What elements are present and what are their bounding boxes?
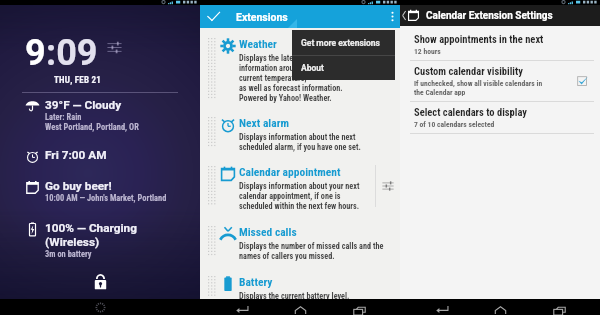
button[interactable]: About: [292, 56, 395, 80]
staticText: Get more extensions: [301, 38, 380, 48]
button[interactable]: Navigate up: [400, 5, 600, 26]
staticText: 12 hours: [414, 47, 441, 56]
staticText: 39°F — Cloudy: [45, 98, 122, 112]
staticText: :09: [46, 32, 98, 74]
button[interactable]: Select calendars to display: [400, 102, 600, 133]
button[interactable]: Show appointments in the next: [400, 29, 600, 60]
staticText: 7 of 10 calendars selected: [414, 120, 495, 129]
button[interactable]: More options: [384, 5, 400, 28]
staticText: Go buy beer!: [45, 179, 112, 193]
staticText: 9: [25, 32, 46, 74]
button[interactable]: Battery: [200, 275, 400, 301]
staticText: current temperature,: [239, 73, 307, 83]
staticText: West Portland, Portland, OR: [45, 122, 139, 132]
button[interactable]: Next alarm: [200, 116, 400, 152]
button[interactable]: Unlock: [94, 274, 107, 290]
button[interactable]: Back: [225, 306, 259, 315]
staticText: Missed calls: [239, 225, 297, 238]
staticText: information around your: [239, 63, 318, 73]
staticText: scheduled alarm, if you have one set.: [239, 142, 361, 152]
button[interactable]: Get more extensions: [292, 30, 395, 55]
staticText: scheduled within the next few hours.: [239, 201, 360, 211]
staticText: Weather: [239, 37, 277, 50]
button[interactable]: Recent apps: [342, 306, 376, 315]
staticText: Custom calendar visibility: [414, 65, 523, 77]
staticText: Displays the current battery level.: [239, 291, 350, 301]
staticText: Select calendars to display: [414, 106, 527, 118]
button[interactable]: Widget settings: [107, 40, 122, 55]
button[interactable]: Done: [200, 5, 226, 28]
staticText: 100% — Charging (Wireless): [45, 221, 137, 249]
staticText: names of callers you missed.: [239, 251, 335, 261]
staticText: Powered by Yahoo! Weather.: [239, 93, 332, 103]
button[interactable]: Fri 7:00 AM: [0, 148, 200, 164]
staticText: Later: Rain: [45, 112, 82, 122]
staticText: Next alarm: [239, 116, 289, 129]
staticText: Displays information about the next: [239, 132, 356, 142]
button[interactable]: 100% — Charging (Wireless): [0, 221, 200, 259]
staticText: Show appointments in the next: [414, 33, 544, 45]
button[interactable]: Go buy beer!: [0, 179, 200, 203]
button[interactable]: Home: [483, 306, 517, 315]
button[interactable]: Back: [425, 306, 459, 315]
staticText: Calendar Extension Settings: [426, 10, 553, 22]
button[interactable]: Home: [283, 306, 317, 315]
staticText: Displays the latest weather: [239, 53, 328, 63]
staticText: calendar appointment, if one is: [239, 191, 341, 201]
button[interactable]: Calendar appointment: [200, 165, 400, 211]
staticText: THU, FEB 21: [54, 75, 101, 86]
button[interactable]: Custom calendar visibility: [400, 61, 600, 101]
button[interactable]: Recent apps: [542, 306, 576, 315]
staticText: About: [301, 63, 324, 73]
staticText: Calendar appointment: [239, 165, 341, 178]
staticText: Fri 7:00 AM: [45, 148, 107, 162]
staticText: If unchecked, show all visible calendars…: [414, 79, 543, 88]
staticText: Displays the number of missed calls and …: [239, 241, 384, 251]
staticText: 10:00 AM — John's Market, Portland: [45, 193, 167, 203]
button[interactable]: Extension settings: [376, 165, 400, 207]
button[interactable]: Custom calendar visibility checkbox: [572, 71, 592, 91]
button[interactable]: 39°F — Cloudy: [0, 98, 200, 132]
button[interactable]: Weather: [200, 37, 400, 103]
staticText: Displays information about your next: [239, 181, 360, 191]
staticText: the Calendar app: [414, 88, 466, 97]
button[interactable]: Missed calls: [200, 225, 400, 261]
staticText: Extensions: [236, 11, 288, 23]
staticText: 3m on battery: [45, 249, 92, 259]
staticText: Battery: [239, 275, 273, 288]
staticText: as well as forecast information.: [239, 83, 343, 93]
